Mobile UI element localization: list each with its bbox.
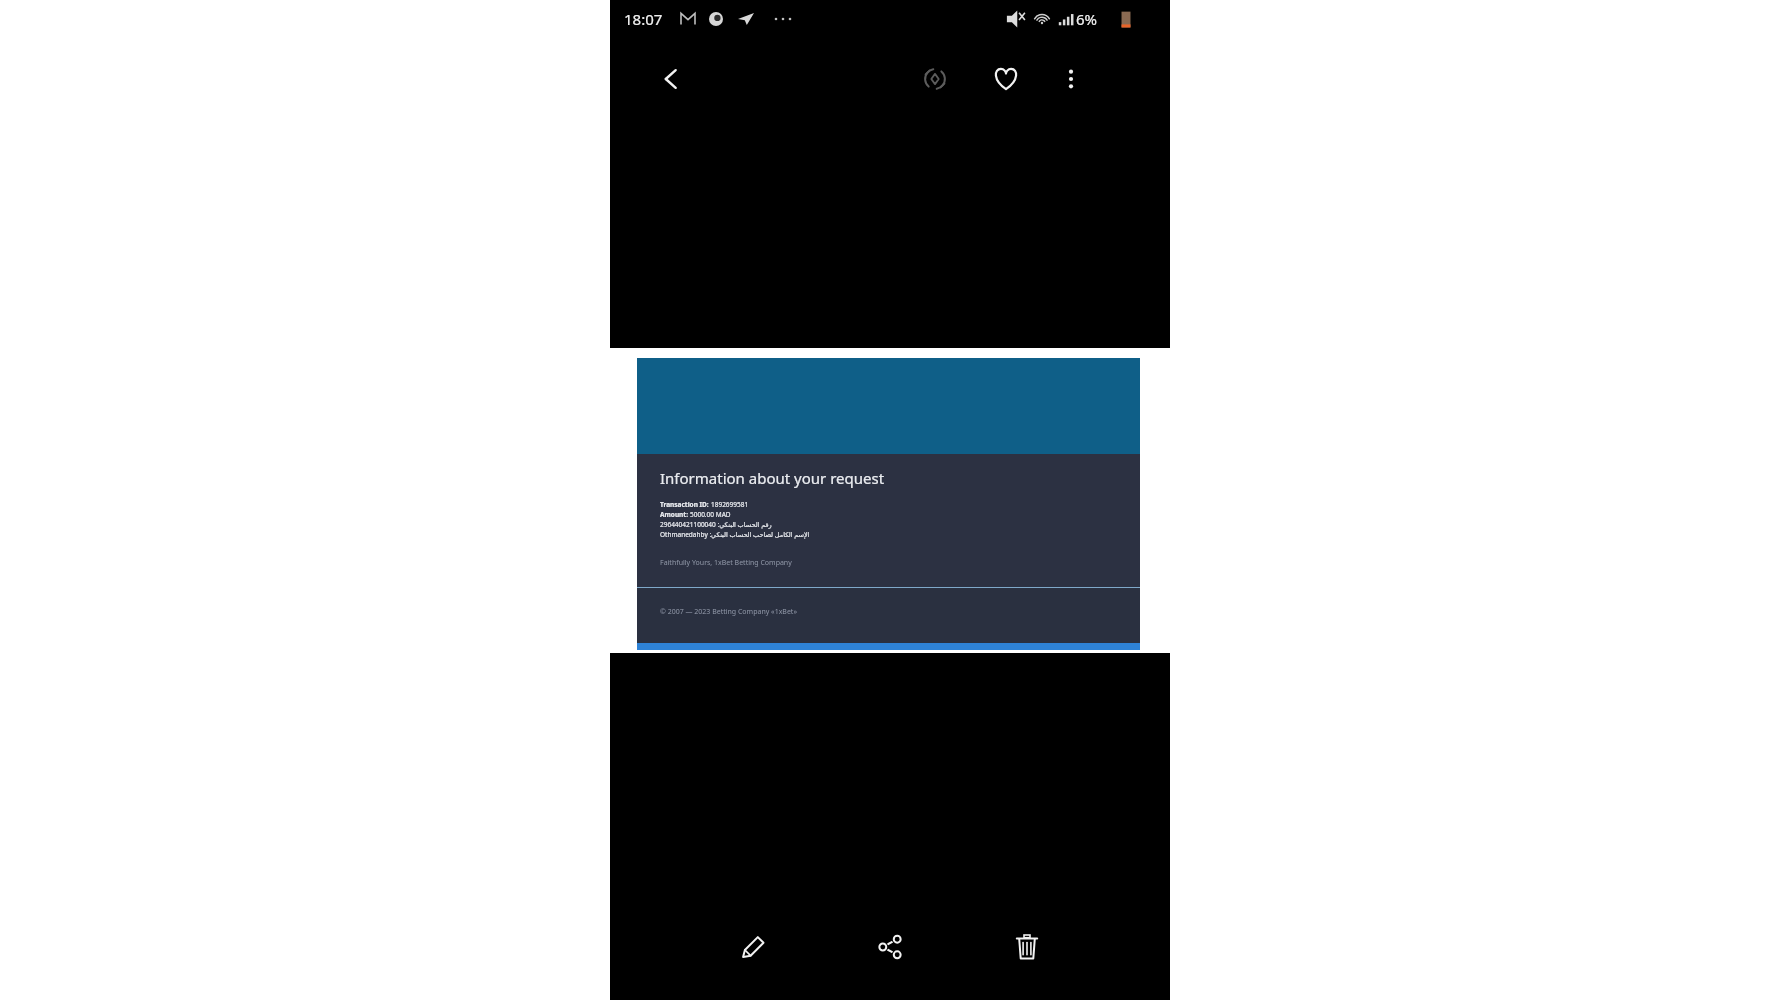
button[interactable]: Back <box>640 48 702 110</box>
staticText: © 2007 — 2023 Betting Company «1xBet» <box>660 607 797 617</box>
staticText: Othmanedahby :الإسم الكامل لصاحب الحساب … <box>660 530 810 539</box>
staticText: Transaction ID: <box>660 500 711 509</box>
button[interactable]: Rotate <box>904 48 966 110</box>
staticText: 6% <box>1076 9 1098 29</box>
staticText: 1892699581 <box>711 500 749 509</box>
staticText: 296440421100040 :رقم الحساب البنكي <box>660 520 772 529</box>
staticText: Information about your request <box>660 468 885 488</box>
button[interactable]: Share <box>864 921 916 973</box>
staticText: Faithfully Yours, 1xBet Betting Company <box>660 558 792 568</box>
staticText: 5000.00 MAD <box>690 510 731 519</box>
button[interactable]: Delete <box>1001 921 1053 973</box>
staticText: Amount: <box>660 510 690 519</box>
button[interactable]: Edit <box>727 921 779 973</box>
staticText: 18:07 <box>624 9 663 29</box>
button[interactable]: More options <box>1040 48 1102 110</box>
button[interactable]: Favorite <box>975 48 1037 110</box>
